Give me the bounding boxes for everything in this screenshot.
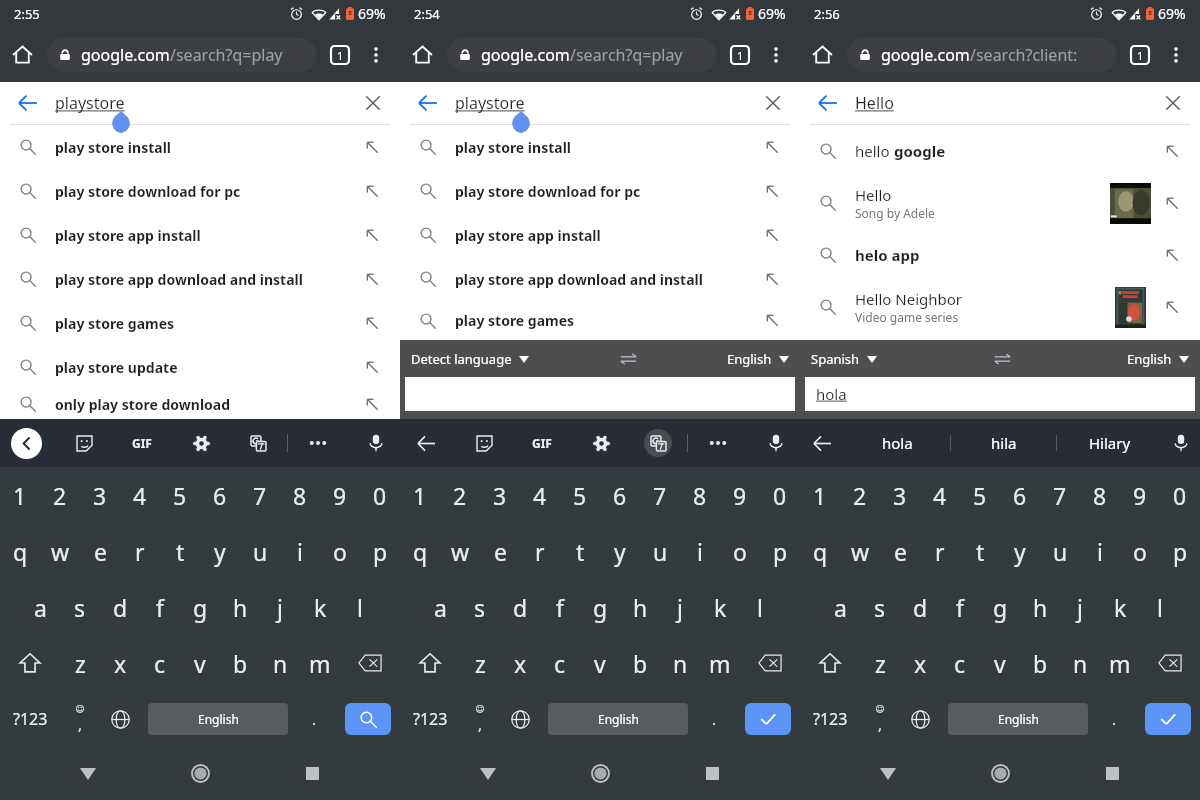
button[interactable]: g [180,579,220,635]
button[interactable]: 1 [800,467,840,523]
button[interactable]: GIF [126,427,158,459]
button[interactable]: ?123 [0,691,60,747]
button[interactable]: e [480,523,520,579]
button[interactable]: 5 [560,467,600,523]
button[interactable]: k [300,579,340,635]
button[interactable]: s [60,579,100,635]
button[interactable]: ?123 [800,691,860,747]
button[interactable]: ☺ [860,691,900,747]
button[interactable]: play store app install [0,213,400,257]
button[interactable]: Backspace [740,635,800,691]
button[interactable]: d [900,579,940,635]
button[interactable]: 7 [640,467,680,523]
button[interactable]: 8 [1080,467,1120,523]
button[interactable]: Insert suggestion [355,125,400,169]
button[interactable]: English [148,703,288,735]
button[interactable]: Back [400,82,455,124]
button[interactable]: b [220,635,260,691]
button[interactable]: 5 [160,467,200,523]
button[interactable]: h [220,579,260,635]
button[interactable]: 2 [840,467,880,523]
button[interactable]: Recent apps [1068,747,1156,800]
button[interactable]: 7 [1040,467,1080,523]
button[interactable]: Insert suggestion [355,389,400,419]
button[interactable]: Swap languages [990,347,1014,371]
button[interactable]: 9 [320,467,360,523]
button[interactable]: q [800,523,840,579]
button[interactable]: Stickers [69,428,99,458]
button[interactable]: 4 [520,467,560,523]
button[interactable]: w [40,523,80,579]
button[interactable]: More options [765,44,787,66]
button[interactable]: Insert suggestion [755,213,800,257]
button[interactable]: 2 [440,467,480,523]
button[interactable]: Hello Neighbor [800,281,1200,333]
button[interactable]: 8 [680,467,720,523]
button[interactable]: Done [745,703,791,735]
button[interactable]: Shift [400,635,460,691]
button[interactable]: Done [1145,703,1191,735]
button[interactable]: play store app install [400,213,800,257]
button[interactable]: . [292,691,336,747]
button[interactable]: 2 [40,467,80,523]
button[interactable]: d [500,579,540,635]
button[interactable]: n [660,635,700,691]
button[interactable]: o [320,523,360,579]
button[interactable]: Shift [0,635,60,691]
button[interactable]: Expand toolbar [11,428,42,459]
button[interactable]: 8 [280,467,320,523]
button[interactable]: play store download for pc [0,169,400,213]
button[interactable]: o [1120,523,1160,579]
button[interactable]: Insert suggestion [1155,281,1200,333]
button[interactable]: play store install [400,125,800,169]
button[interactable]: Insert suggestion [355,213,400,257]
button[interactable]: q [400,523,440,579]
button[interactable]: helo app [800,229,1200,281]
button[interactable]: English [548,703,688,735]
button[interactable]: b [1020,635,1060,691]
button[interactable]: Insert suggestion [1155,177,1200,229]
button[interactable]: 4 [920,467,960,523]
button[interactable]: Swap languages [616,347,640,371]
button[interactable]: hello [800,125,1200,177]
button[interactable]: g [980,579,1020,635]
button[interactable]: Insert suggestion [355,257,400,301]
button[interactable]: Home [406,38,439,71]
button[interactable]: h [1020,579,1060,635]
button[interactable]: m [1100,635,1140,691]
button[interactable]: Home [132,747,268,800]
button[interactable]: Voice input [1162,419,1200,467]
button[interactable]: Search [345,703,391,735]
button[interactable]: ☺ [60,691,100,747]
button[interactable]: i [1080,523,1120,579]
button[interactable]: v [980,635,1020,691]
button[interactable]: z [860,635,900,691]
button[interactable]: 5 [960,467,1000,523]
button[interactable]: Recent apps [668,747,756,800]
button[interactable]: Insert suggestion [755,301,800,340]
button[interactable]: Hello [800,177,1200,229]
button[interactable]: google.com [447,38,717,72]
button[interactable]: x [100,635,140,691]
button[interactable]: play store app download and install [0,257,400,301]
button[interactable]: Voice input [761,428,791,458]
button[interactable]: Back [844,747,932,800]
button[interactable]: j [260,579,300,635]
button[interactable]: a [820,579,860,635]
button[interactable]: u [1040,523,1080,579]
button[interactable]: Tabs [327,42,353,68]
button[interactable]: Insert suggestion [755,169,800,213]
button[interactable]: Insert suggestion [355,301,400,345]
button[interactable]: 6 [1000,467,1040,523]
button[interactable]: Insert suggestion [355,169,400,213]
button[interactable]: Hilary [1057,419,1162,467]
button[interactable]: Spanish [811,350,877,368]
button[interactable]: x [500,635,540,691]
button[interactable]: 0 [1160,467,1200,523]
button[interactable]: l [340,579,380,635]
button[interactable]: i [680,523,720,579]
button[interactable]: Back [0,82,55,124]
button[interactable]: i [280,523,320,579]
button[interactable]: b [620,635,660,691]
button[interactable]: u [240,523,280,579]
